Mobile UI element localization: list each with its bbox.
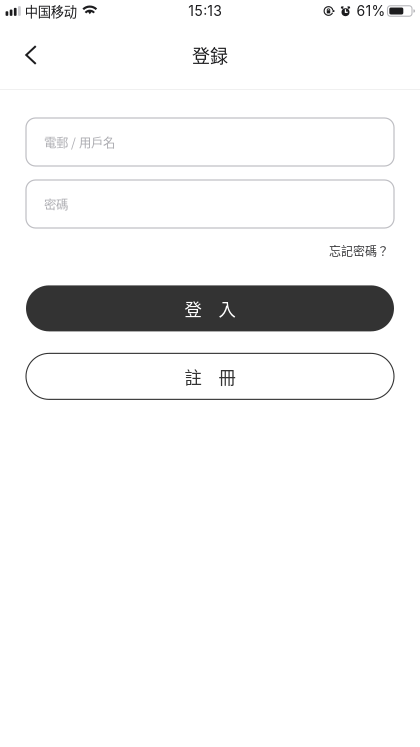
button[interactable]: 忘記密碼？: [329, 240, 394, 261]
staticText: 15:13: [188, 2, 222, 19]
staticText: 註 冊: [184, 364, 235, 389]
staticText: 登 入: [184, 296, 235, 321]
staticText: 電郵 / 用戶名: [44, 133, 115, 151]
staticText: 密碼: [44, 195, 68, 213]
button[interactable]: 註 冊: [26, 353, 394, 399]
staticText: 中国移动: [25, 1, 77, 21]
button[interactable]: Back: [0, 33, 53, 77]
staticText: 登録: [192, 42, 228, 68]
button[interactable]: 登 入: [26, 285, 394, 331]
staticText: 忘記密碼？: [329, 242, 389, 259]
staticText: 61%: [356, 2, 385, 19]
